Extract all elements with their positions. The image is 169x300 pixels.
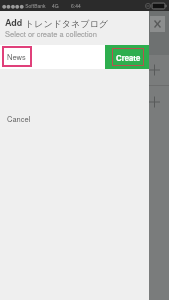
staticText: ●●●●● SoftBank	[2, 2, 46, 9]
staticText: Add	[5, 16, 25, 29]
staticText: Cancel	[7, 113, 31, 124]
button[interactable]: Close	[150, 16, 165, 32]
staticText: 6:44	[71, 2, 81, 9]
staticText: News	[7, 51, 26, 62]
button[interactable]: New tab	[149, 55, 169, 85]
button[interactable]: New tab	[149, 86, 169, 118]
staticText: 4G	[52, 2, 59, 9]
button[interactable]: News	[2, 46, 32, 67]
staticText: トレンドタネブログ	[25, 18, 108, 29]
button[interactable]: Cancel	[0, 107, 149, 129]
staticText: Create	[116, 52, 141, 63]
other: Battery	[152, 3, 167, 9]
staticText: Select or create a collection	[5, 28, 97, 39]
button[interactable]: Create	[105, 45, 149, 69]
